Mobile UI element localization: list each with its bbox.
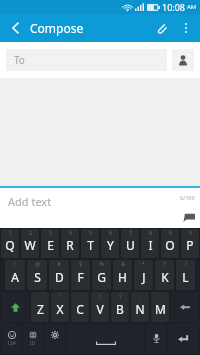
button[interactable]: 1 [1,229,19,258]
button[interactable]: ! [5,260,25,290]
staticText: ! [14,261,16,268]
button[interactable]: ( [91,292,109,322]
staticText: G [97,269,106,285]
staticText: * [142,261,145,268]
button[interactable]: 2 [21,229,39,258]
button[interactable]: Symbols [1,324,21,354]
button[interactable]: ? [155,260,174,290]
button[interactable]: Add text [0,188,200,228]
button[interactable]: 0 [181,229,199,258]
staticText: 9 [169,230,172,237]
button[interactable]: * [134,260,153,290]
staticText: To [14,53,25,67]
staticText: U [126,237,135,253]
staticText: Q [5,237,15,253]
staticText: AM [187,3,197,11]
button[interactable]: 5 [81,229,99,258]
button[interactable]: : [151,292,169,322]
staticText: R [66,237,74,253]
staticText: 8 [149,230,152,237]
button[interactable]: Send [180,209,196,225]
staticText: ( [99,293,101,300]
button[interactable]: " [51,292,69,322]
button[interactable]: % [92,260,111,290]
staticText: ) [119,293,121,300]
staticText: $ [79,261,82,268]
staticText: 5 [89,230,92,237]
staticText: L [182,269,189,285]
staticText: : [159,293,161,300]
button[interactable]: Settings [45,324,65,354]
staticText: 0/160 [180,194,195,201]
button[interactable]: 8 [141,229,159,258]
staticText: K [161,269,169,285]
staticText: Z [37,301,44,317]
staticText: W [24,237,36,253]
staticText: ID [30,340,36,347]
staticText: 10:08 [162,1,186,13]
button[interactable]: Language [23,324,43,354]
button[interactable]: 3 [41,229,59,258]
button[interactable]: To [6,49,167,71]
staticText: - [39,293,41,300]
staticText: B [116,301,124,317]
button[interactable]: 6 [101,229,119,258]
staticText: X [56,301,64,317]
button[interactable]: & [113,260,132,290]
staticText: 12# [7,340,16,347]
staticText: I [148,237,153,253]
staticText: Add text [8,194,52,209]
button[interactable]: 7 [121,229,139,258]
staticText: S [34,269,41,285]
staticText: 4 [69,230,72,237]
staticText: E [47,237,54,253]
staticText: 3 [49,230,52,237]
button[interactable]: ) [111,292,129,322]
button[interactable]: @ [27,260,47,290]
staticText: F [77,269,84,285]
staticText: M [155,301,166,317]
staticText: , [139,293,141,300]
button[interactable]: # [49,260,69,290]
button[interactable]: , [131,292,149,322]
button[interactable]: Attach [147,14,175,42]
button[interactable]: Space [67,324,144,354]
button[interactable]: ' [71,292,89,322]
button[interactable]: Backspace [171,292,199,322]
staticText: D [55,269,64,285]
button[interactable]: Pick contact [172,49,194,71]
staticText: ? [163,261,166,268]
staticText: Compose [30,20,147,36]
staticText: N [135,301,145,317]
staticText: @ [35,261,40,268]
staticText: Y [107,237,114,253]
staticText: O [165,237,175,253]
button[interactable]: Enter [168,324,199,354]
staticText: 2 [29,230,32,237]
staticText: / [185,261,187,268]
button[interactable]: Back [0,14,30,42]
button[interactable]: - [31,292,49,322]
staticText: J [142,269,146,285]
staticText: P [186,237,194,253]
staticText: ' [79,293,81,300]
button[interactable]: 4 [61,229,79,258]
staticText: % [99,261,104,268]
button[interactable]: Voice input [146,324,166,354]
button[interactable]: Shift [1,292,29,322]
staticText: H [118,269,127,285]
staticText: # [57,261,61,268]
button[interactable]: / [176,260,195,290]
staticText: 7 [129,230,132,237]
staticText: 6 [109,230,112,237]
staticText: T [87,237,94,253]
staticText: C [76,301,84,317]
staticText: V [96,301,104,317]
button[interactable]: More options [175,14,197,42]
staticText: A [11,269,19,285]
button[interactable]: 9 [161,229,179,258]
staticText: 0 [189,230,192,237]
staticText: & [121,261,125,268]
button[interactable]: $ [71,260,90,290]
staticText: " [59,293,62,300]
